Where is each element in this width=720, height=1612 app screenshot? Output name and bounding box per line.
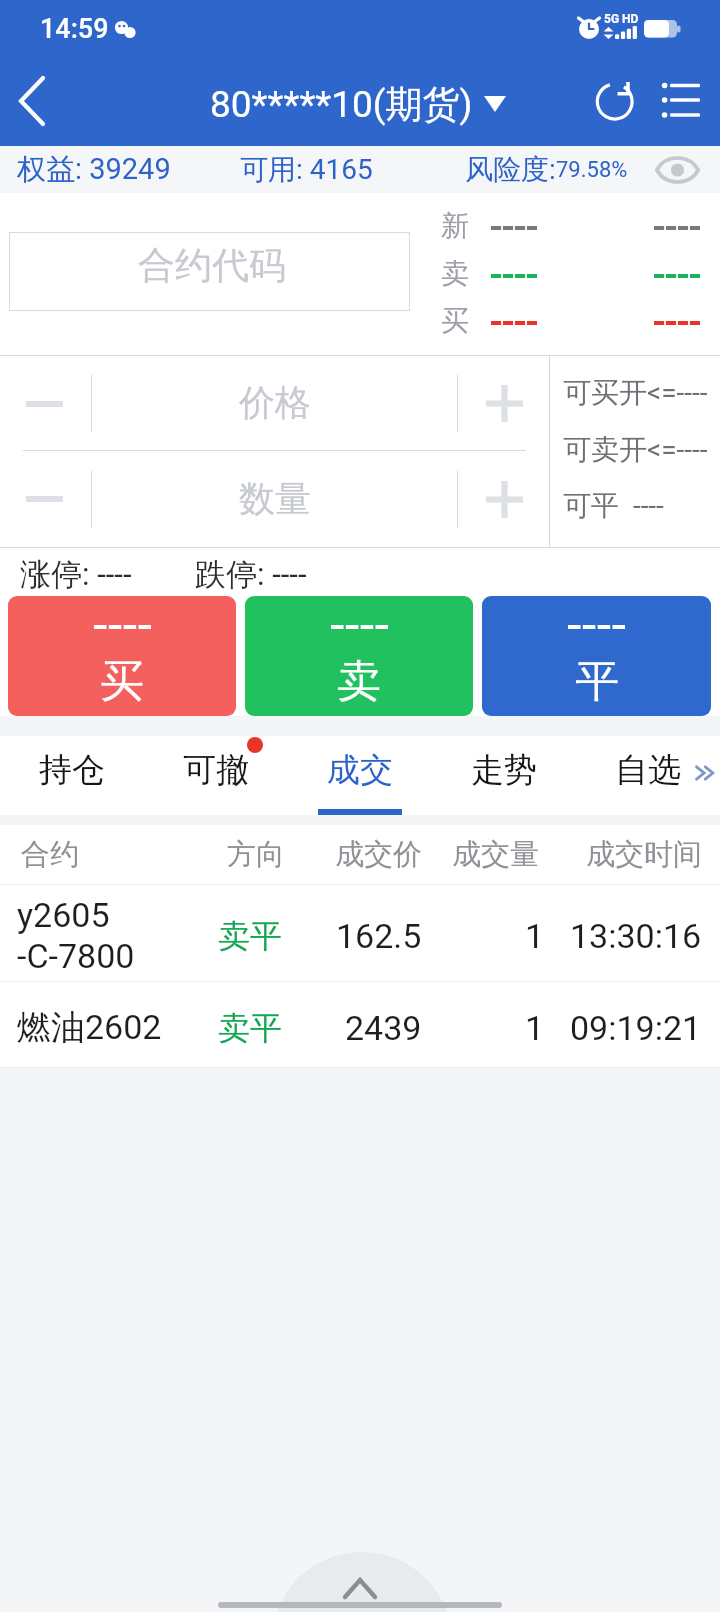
button[interactable]: Back	[0, 62, 62, 146]
staticText: 跌停: ----	[195, 555, 307, 594]
button[interactable]: Menu	[650, 62, 720, 146]
staticText: 燃油2602	[17, 1006, 162, 1049]
staticText: 成交时间	[586, 836, 702, 873]
staticText: 数量	[239, 476, 311, 521]
staticText: 合约代码	[138, 242, 286, 289]
staticText: 可撤	[183, 749, 249, 791]
staticText: 自选	[615, 749, 681, 791]
staticText: 涨停: ----	[20, 555, 132, 594]
staticText: 80*****10(期货)	[210, 81, 473, 128]
staticText: 平	[575, 654, 619, 709]
button[interactable]: 卖	[245, 596, 473, 716]
button[interactable]: Toggle balance visibility	[648, 146, 706, 193]
button[interactable]: Refresh	[580, 62, 646, 146]
button[interactable]: 合约代码	[9, 232, 410, 311]
button[interactable]: Collapse keypad	[0, 1532, 720, 1612]
staticText: 09:19:21	[570, 1008, 702, 1048]
staticText: 5G HD	[604, 12, 639, 26]
button[interactable]: 持仓	[0, 736, 144, 815]
button[interactable]: 数量	[92, 451, 457, 547]
button[interactable]: More tabs	[676, 736, 720, 815]
button[interactable]: 自选	[576, 736, 720, 815]
staticText: 卖平	[218, 1008, 282, 1048]
staticText: 2439	[345, 1008, 422, 1048]
button[interactable]: Increase 数量	[458, 451, 549, 547]
staticText: 新	[441, 208, 469, 243]
staticText: 可用: 4165	[240, 152, 373, 187]
staticText: 14:59	[40, 13, 109, 45]
button[interactable]: 80*****10(期货)	[210, 62, 506, 146]
staticText: 成交价	[335, 836, 422, 873]
button[interactable]: Decrease 价格	[0, 356, 91, 451]
button[interactable]: Increase 价格	[458, 356, 549, 451]
button[interactable]: 平	[482, 596, 711, 716]
staticText: 买	[441, 303, 469, 338]
staticText: 162.5	[336, 916, 422, 956]
button[interactable]: 可撤	[144, 736, 288, 815]
button[interactable]: 燃油2602	[0, 982, 720, 1067]
staticText: 走势	[471, 749, 537, 791]
staticText: 方向	[227, 836, 285, 873]
staticText: 价格	[239, 380, 311, 425]
button[interactable]: y2605 -C-7800	[0, 885, 720, 981]
staticText: 风险度:	[465, 152, 556, 187]
staticText: 可买开<=----	[563, 375, 708, 410]
staticText: 可卖开<=----	[563, 432, 708, 467]
staticText: 13:30:16	[570, 916, 702, 956]
staticText: 合约	[21, 836, 79, 873]
staticText: 卖	[337, 654, 381, 709]
staticText: 买	[100, 654, 144, 709]
button[interactable]: 买	[8, 596, 236, 716]
staticText: 成交量	[452, 836, 539, 873]
staticText: 可平 ----	[563, 488, 664, 523]
staticText: 1	[525, 916, 545, 956]
staticText: 79.58%	[556, 157, 628, 183]
staticText: 权益: 39249	[17, 151, 171, 188]
staticText: 持仓	[39, 749, 105, 791]
staticText: 1	[525, 1008, 545, 1048]
button[interactable]: 走势	[432, 736, 576, 815]
button[interactable]: 价格	[92, 356, 457, 451]
staticText: 成交	[327, 749, 393, 791]
button[interactable]: 成交	[288, 736, 432, 815]
staticText: 卖	[441, 256, 469, 291]
button[interactable]: Decrease 数量	[0, 451, 91, 547]
staticText: 卖平	[218, 916, 282, 956]
staticText: y2605 -C-7800	[17, 895, 135, 977]
